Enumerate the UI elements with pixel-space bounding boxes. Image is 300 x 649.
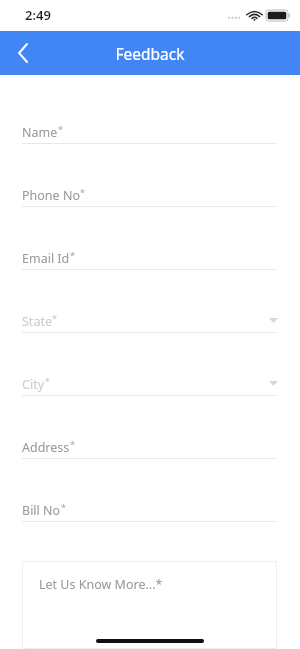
button[interactable]: Phone No	[0, 169, 300, 232]
button[interactable]: Email Id	[0, 232, 300, 295]
staticText: *	[80, 186, 85, 198]
staticText: Address	[22, 439, 70, 456]
staticText: Feedback	[115, 43, 185, 64]
staticText: *	[61, 501, 66, 513]
button[interactable]: Address	[0, 421, 300, 484]
button[interactable]: Bill No	[0, 484, 300, 547]
staticText: Phone No	[22, 187, 80, 204]
staticText: *	[70, 438, 75, 450]
staticText: City	[22, 376, 45, 393]
button[interactable]: Let Us Know More...*	[22, 561, 277, 649]
staticText: Email Id	[22, 250, 70, 267]
button[interactable]: Back	[0, 31, 46, 75]
staticText: *	[52, 312, 57, 324]
staticText: *	[70, 249, 75, 261]
staticText: Name	[22, 124, 58, 141]
button[interactable]: State	[0, 295, 300, 358]
staticText: *	[58, 123, 63, 135]
staticText: *	[45, 375, 50, 387]
staticText: Let Us Know More...*	[39, 576, 163, 593]
button[interactable]: City	[0, 358, 300, 421]
staticText: State	[22, 313, 52, 330]
staticText: 2:49	[25, 6, 51, 24]
button[interactable]: Name	[0, 106, 300, 169]
staticText: Bill No	[22, 502, 61, 519]
